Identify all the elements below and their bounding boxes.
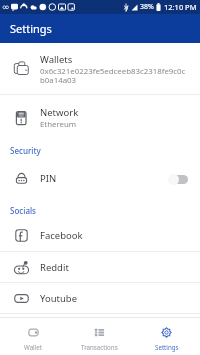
staticText: 38% (140, 2, 154, 12)
staticText: Network (40, 106, 79, 119)
staticText: 0x6c321e0223fe5edceeb83c2318fe9c0cb0a14a… (40, 66, 186, 85)
button[interactable]: Youtube (0, 283, 200, 313)
staticText: Wallets (40, 53, 73, 66)
staticText: 12:10 PM (164, 2, 197, 12)
button[interactable]: Facebook (0, 220, 200, 251)
staticText: Youtube (40, 292, 78, 305)
staticText: Facebook (40, 229, 83, 242)
staticText: PIN (40, 172, 57, 185)
staticText: Settings (155, 343, 179, 351)
button[interactable]: PIN (0, 163, 200, 194)
button[interactable]: Transactions (66, 318, 133, 355)
button[interactable]: Wallets (0, 43, 200, 94)
staticText: Transactions (81, 343, 118, 351)
staticText: Socials (10, 205, 36, 216)
button[interactable]: Wallet (0, 318, 66, 355)
button[interactable]: Settings (133, 318, 200, 355)
button[interactable]: Reddit (0, 252, 200, 282)
button[interactable]: Network (0, 95, 200, 140)
staticText: Settings (10, 21, 52, 36)
staticText: Security (10, 145, 41, 156)
staticText: Ethereum (40, 119, 77, 130)
staticText: Reddit (40, 261, 69, 274)
staticText: Wallet (24, 343, 43, 351)
